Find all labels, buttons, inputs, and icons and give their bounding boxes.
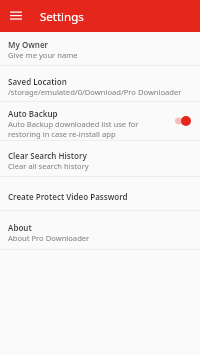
button[interactable]: Auto Backup xyxy=(0,102,200,140)
button[interactable]: About xyxy=(0,211,200,249)
staticText: Auto Backup downloaded list use for rest… xyxy=(8,119,139,139)
staticText: Settings xyxy=(40,9,84,25)
button[interactable]: Clear Search History xyxy=(0,141,200,176)
staticText: Clear all search history xyxy=(8,161,89,171)
staticText: About Pro Downloader xyxy=(8,233,90,243)
staticText: Auto Backup xyxy=(8,108,58,119)
staticText: Clear Search History xyxy=(8,150,87,161)
button[interactable]: Open navigation drawer xyxy=(5,5,27,27)
staticText: My Owner xyxy=(8,39,49,50)
staticText: /storage/emulated/0/Download/Pro Downloa… xyxy=(8,87,182,97)
staticText: Create Protect Video Password xyxy=(8,191,128,202)
button[interactable]: Create Protect Video Password xyxy=(0,177,200,210)
staticText: Saved Location xyxy=(8,76,67,87)
staticText: About xyxy=(8,222,32,233)
button[interactable]: Auto Backup toggle xyxy=(175,114,195,128)
staticText: Give me your name xyxy=(8,50,78,60)
button[interactable]: My Owner xyxy=(0,32,200,65)
button[interactable]: Saved Location xyxy=(0,66,200,101)
